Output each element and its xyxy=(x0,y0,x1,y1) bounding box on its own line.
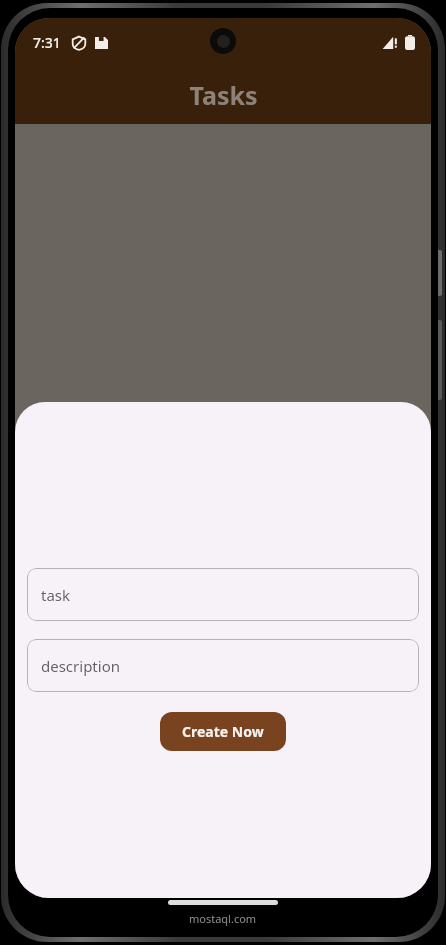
staticText: 7:31 xyxy=(33,33,61,52)
staticText: Create Now xyxy=(182,722,264,741)
button[interactable]: task xyxy=(27,568,419,621)
staticText: mostaql.com xyxy=(189,911,257,926)
staticText: description xyxy=(41,656,120,676)
staticText: task xyxy=(41,585,71,605)
staticText: Tasks xyxy=(189,78,258,112)
button[interactable]: description xyxy=(27,639,419,692)
button[interactable]: Create Now xyxy=(160,712,286,751)
